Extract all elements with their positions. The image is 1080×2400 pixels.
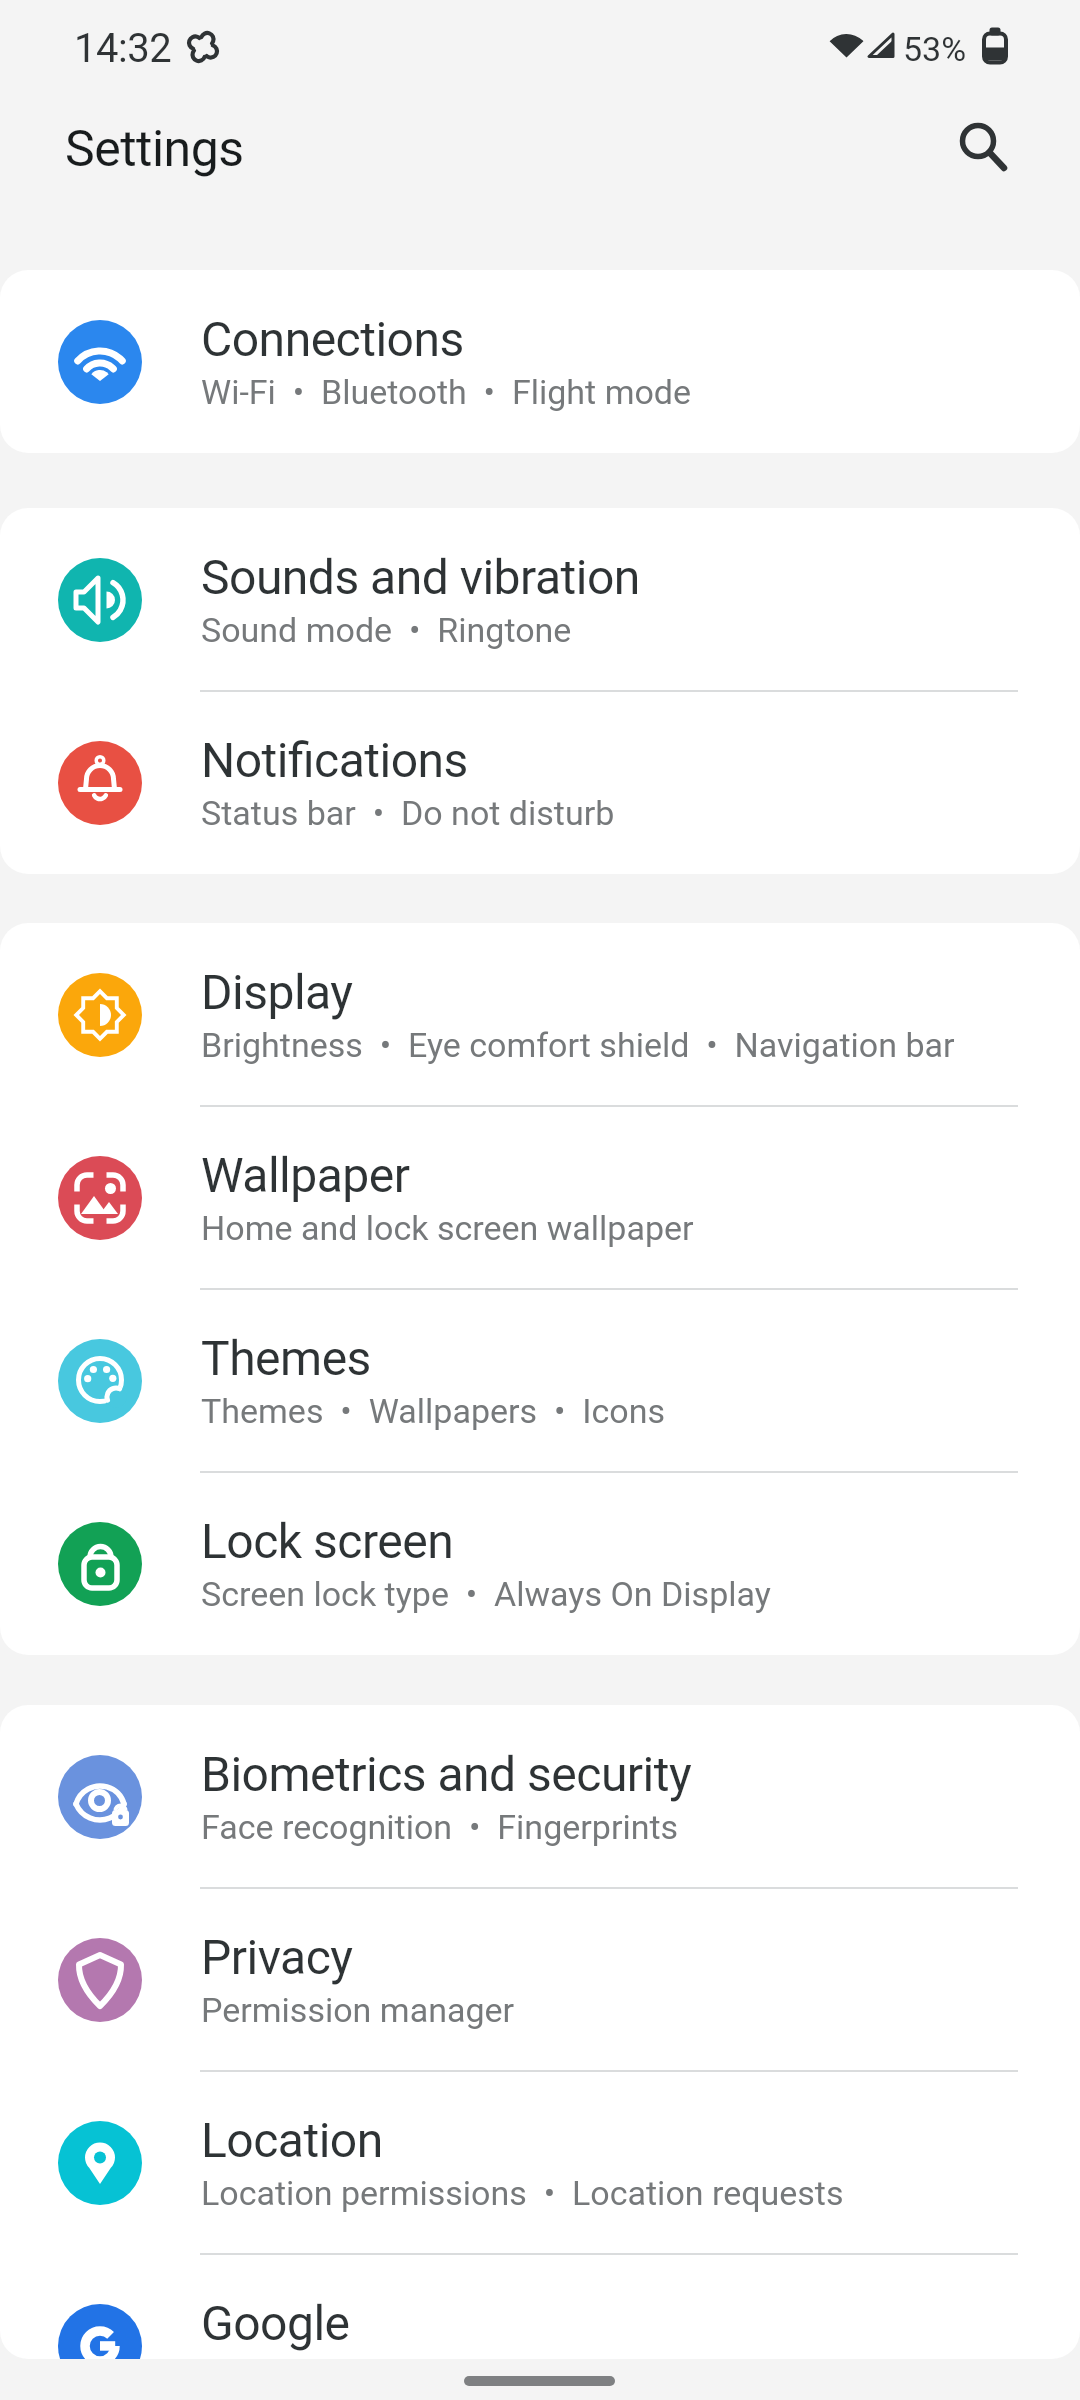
button[interactable]: Lock screen [0,1472,1080,1655]
staticText: Face recognition • Fingerprints [201,1807,679,1847]
staticText: Notifications [201,732,468,788]
button[interactable]: Connections [0,270,1080,453]
staticText: Location permissions • Location requests [201,2173,844,2213]
staticText: Biometrics and security [201,1746,692,1802]
staticText: Connections [201,311,464,367]
staticText: Brightness • Eye comfort shield • Naviga… [201,1025,955,1065]
staticText: Lock screen [201,1513,454,1569]
staticText: Settings [65,120,244,179]
staticText: 14:32 [74,25,172,72]
staticText: Location [201,2112,383,2168]
button[interactable]: Google [0,2254,1080,2359]
staticText: Home and lock screen wallpaper [201,1208,694,1248]
staticText: 53% [903,29,967,69]
button[interactable]: Notifications [0,691,1080,874]
button[interactable]: Themes [0,1289,1080,1472]
button[interactable]: Display [0,923,1080,1106]
button[interactable]: Biometrics and security [0,1705,1080,1888]
staticText: Privacy [201,1929,353,1985]
button[interactable]: Location [0,2071,1080,2254]
staticText: Wi-Fi • Bluetooth • Flight mode [201,372,692,412]
staticText: Sounds and vibration [201,549,640,605]
staticText: Themes • Wallpapers • Icons [201,1391,666,1431]
staticText: Themes [201,1330,371,1386]
button[interactable]: Privacy [0,1888,1080,2071]
staticText: Sound mode • Ringtone [201,610,572,650]
button[interactable]: Wallpaper [0,1106,1080,1289]
staticText: Display [201,964,353,1020]
staticText: Google [201,2295,350,2351]
button[interactable] [944,107,1024,187]
staticText: Wallpaper [201,1147,410,1203]
staticText: Screen lock type • Always On Display [201,1574,771,1614]
staticText: Permission manager [201,1990,515,2030]
staticText: Status bar • Do not disturb [201,793,615,833]
button[interactable]: Sounds and vibration [0,508,1080,691]
